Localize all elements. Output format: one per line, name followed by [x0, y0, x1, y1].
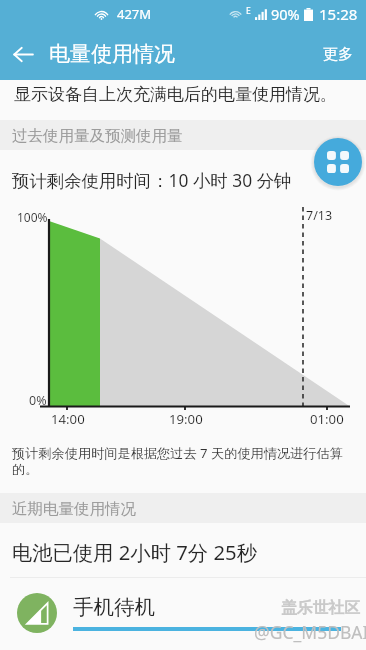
staticText: 电池已使用 2小时 7分 25秒 [12, 538, 257, 566]
button[interactable]: 返回 [0, 31, 46, 77]
staticText: 15:28 [319, 4, 358, 24]
staticText: 01:00 [310, 410, 344, 428]
staticText: 手机待机 [73, 594, 155, 620]
staticText: 过去使用量及预测使用量 [12, 126, 183, 146]
staticText: 近期电量使用情况 [12, 499, 136, 519]
staticText: 显示设备自上次充满电后的电量使用情况。 [14, 84, 337, 105]
staticText: 预计剩余使用时间：10 小时 30 分钟 [12, 168, 292, 192]
staticText: 电量使用情况 [49, 41, 175, 67]
staticText: @GC_M5DBAIU [254, 620, 366, 644]
button[interactable]: 手机待机 [0, 578, 366, 650]
staticText: 0% [29, 392, 47, 409]
staticText: 预计剩余使用时间是根据您过去 7 天的使用情况进行估算的。 [12, 444, 348, 478]
staticText: 14:00 [51, 410, 85, 428]
staticText: 更多 [323, 45, 353, 64]
staticText: 盖乐世社区 [281, 598, 360, 618]
staticText: 19:00 [169, 410, 203, 428]
staticText: 100% [17, 209, 48, 225]
staticText: 90% [271, 4, 300, 24]
staticText: E [246, 5, 251, 17]
button[interactable]: 更多 [310, 33, 366, 76]
button[interactable]: 应用列表 [314, 138, 362, 186]
staticText: 7/13 [306, 207, 333, 224]
staticText: 427M [117, 5, 152, 23]
